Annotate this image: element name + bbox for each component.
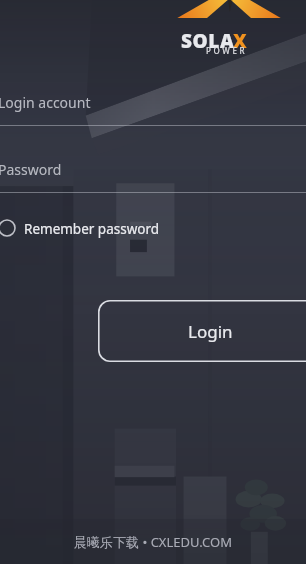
button[interactable]: Login account (0, 88, 306, 126)
staticText: Login (188, 320, 233, 343)
button[interactable]: Login (98, 300, 306, 362)
staticText: Login account (0, 93, 91, 112)
button[interactable]: Password (0, 155, 306, 193)
staticText: Password (0, 160, 62, 179)
staticText: X (233, 28, 247, 54)
button[interactable]: Remember password (0, 212, 196, 244)
staticText: 晨曦乐下载 • CXLEDU.COM (0, 533, 306, 555)
staticText: Remember password (24, 220, 160, 238)
staticText: POWER (206, 45, 248, 56)
staticText: SOLA (181, 28, 235, 54)
